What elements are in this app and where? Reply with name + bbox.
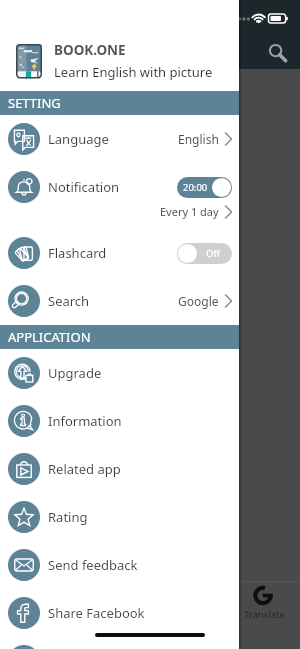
staticText: Upgrade [48, 364, 102, 382]
button[interactable]: Send feedback [0, 541, 239, 589]
staticText: APPLICATION [8, 328, 91, 346]
button[interactable]: Search [261, 36, 293, 68]
staticText: Notification [48, 178, 120, 196]
button[interactable]: Search [0, 277, 239, 325]
staticText: Related app [48, 460, 121, 478]
button[interactable]: Language [0, 115, 239, 163]
staticText: Information [48, 412, 122, 430]
button[interactable]: Information [0, 397, 239, 445]
staticText: SETTING [8, 94, 61, 112]
staticText: Google [178, 293, 219, 309]
staticText: Share Facebook [48, 604, 145, 622]
button[interactable]: Flashcard [0, 229, 239, 277]
staticText: Language [48, 130, 109, 148]
staticText: Learn English with picture [54, 63, 213, 81]
staticText: Off [206, 247, 220, 260]
button[interactable]: Off [177, 243, 232, 264]
staticText: Search [48, 292, 90, 310]
button[interactable]: Related app [0, 445, 239, 493]
button[interactable]: Rating [0, 493, 239, 541]
button[interactable]: Share app [0, 637, 239, 649]
staticText: English [178, 131, 219, 147]
staticText: Rating [48, 508, 88, 526]
staticText: Send feedback [48, 556, 138, 574]
button[interactable]: 20:00 [177, 177, 232, 198]
staticText: BOOK.ONE [54, 41, 126, 59]
staticText: Flashcard [48, 244, 107, 262]
staticText: 20:00 [183, 181, 208, 194]
button[interactable]: Notification [0, 163, 239, 229]
button[interactable]: Upgrade [0, 349, 239, 397]
staticText: Translate [244, 608, 285, 621]
staticText: Every 1 day [160, 204, 219, 219]
button[interactable]: Share Facebook [0, 589, 239, 637]
